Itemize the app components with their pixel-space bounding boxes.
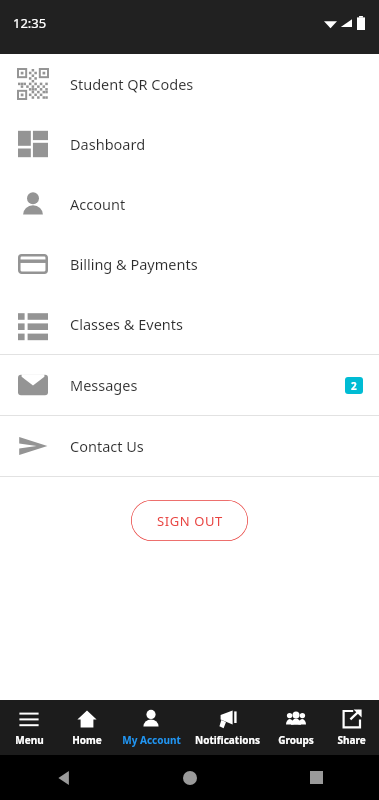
staticText: Billing & Payments xyxy=(70,254,198,274)
staticText: Classes & Events xyxy=(70,314,183,334)
staticText: Home xyxy=(72,733,102,747)
staticText: Share xyxy=(337,733,366,747)
button[interactable]: Share xyxy=(324,700,379,755)
button[interactable]: SIGN OUT xyxy=(131,500,248,541)
button[interactable]: Menu xyxy=(0,700,58,755)
button[interactable]: Account xyxy=(0,174,379,234)
staticText: 12:35 xyxy=(13,14,47,32)
button[interactable]: Dashboard xyxy=(0,114,379,174)
button[interactable]: Billing & Payments xyxy=(0,234,379,294)
staticText: Groups xyxy=(278,733,314,747)
button[interactable]: Notifications xyxy=(187,700,267,755)
other: Back xyxy=(57,771,71,785)
button[interactable]: Contact Us xyxy=(0,416,379,476)
button[interactable]: Groups xyxy=(267,700,324,755)
staticText: My Account xyxy=(122,733,181,747)
staticText: Messages xyxy=(70,375,138,395)
button[interactable]: Messages xyxy=(0,355,379,415)
staticText: Contact Us xyxy=(70,436,144,456)
staticText: Menu xyxy=(15,733,44,747)
staticText: Notifications xyxy=(195,733,260,747)
button[interactable]: My Account xyxy=(115,700,187,755)
staticText: SIGN OUT xyxy=(157,512,223,530)
button[interactable]: Student QR Codes xyxy=(0,54,379,114)
staticText: Account xyxy=(70,194,126,214)
button[interactable]: Classes & Events xyxy=(0,294,379,354)
staticText: Dashboard xyxy=(70,134,146,154)
button[interactable]: Home xyxy=(58,700,115,755)
staticText: 2 xyxy=(351,379,357,393)
other: Home xyxy=(183,771,197,785)
staticText: Student QR Codes xyxy=(70,74,194,94)
